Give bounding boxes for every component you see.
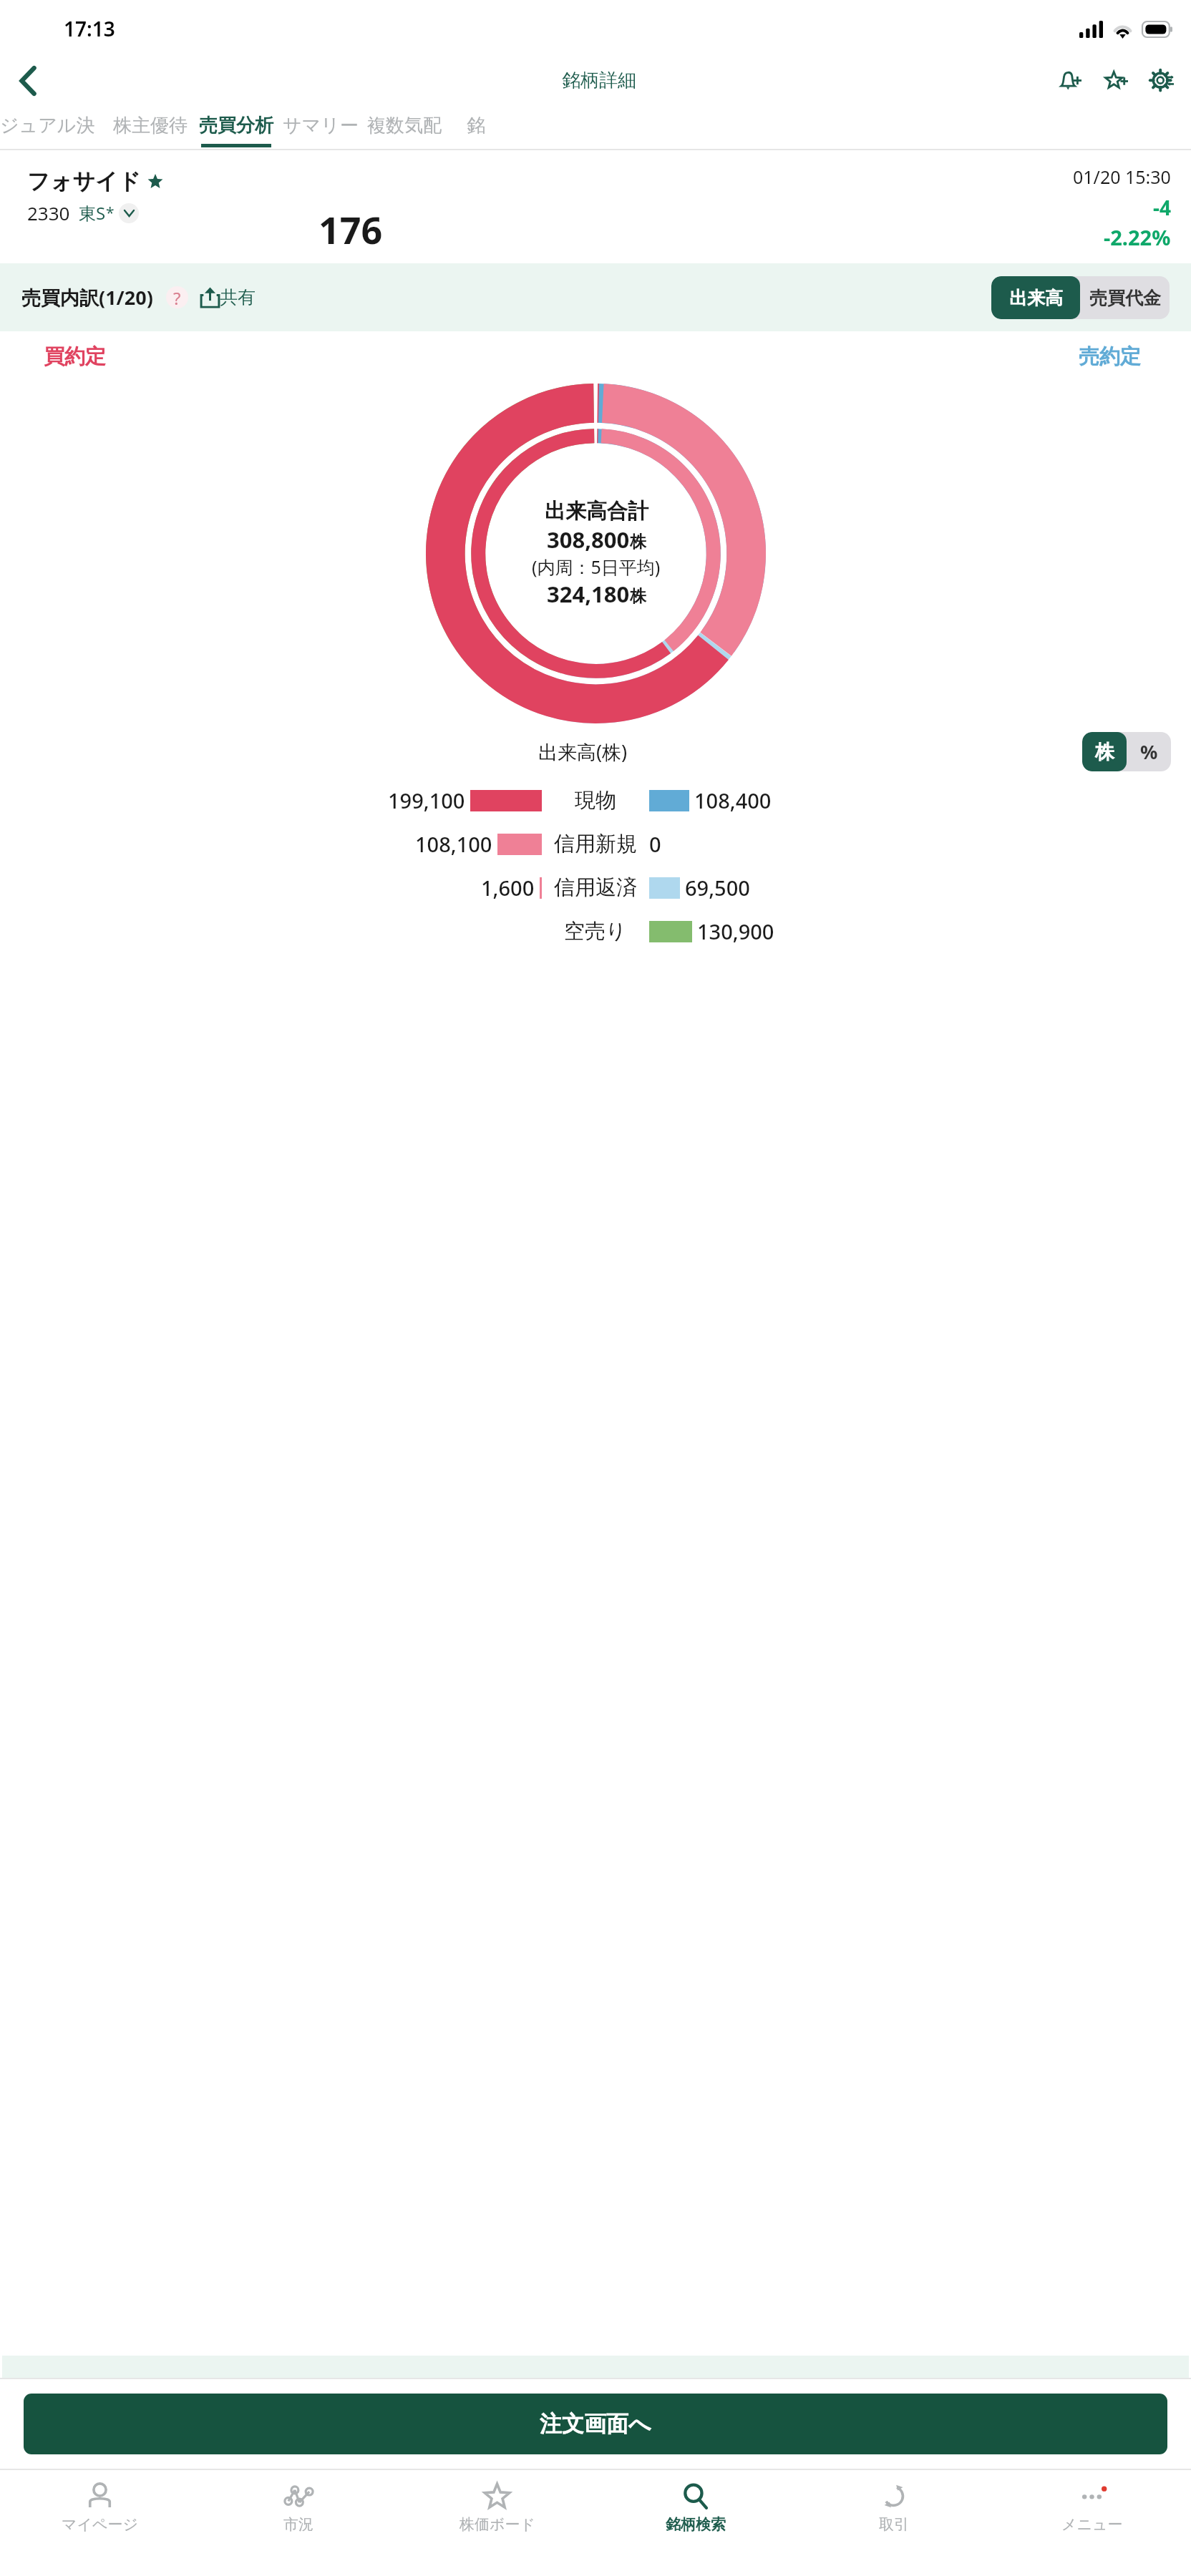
staticText: 17:13 <box>64 15 115 42</box>
button[interactable]: ジュアル決算 <box>0 104 107 150</box>
staticText: 信用新規 <box>554 831 637 857</box>
staticText: 1,600 <box>481 874 535 902</box>
button[interactable]: 売買分析 <box>193 104 279 150</box>
staticText: 信用返済 <box>554 874 637 901</box>
staticText: 69,500 <box>685 874 750 902</box>
staticText: 現物 <box>575 787 616 814</box>
button[interactable]: Back <box>9 61 48 100</box>
button[interactable]: 複数気配 <box>361 104 447 150</box>
button[interactable]: 108,100 <box>0 822 1191 866</box>
button[interactable]: 銘 <box>447 104 505 150</box>
staticText: % <box>1140 738 1158 765</box>
staticText: ? <box>173 286 181 308</box>
staticText: 株 <box>1095 740 1114 764</box>
staticText: フォサイド <box>27 167 141 195</box>
staticText: -2.22% <box>1104 223 1171 251</box>
staticText: 空売り <box>564 918 627 945</box>
button[interactable]: 空売り <box>0 909 1191 953</box>
staticText: 売約定 <box>1079 343 1141 370</box>
button[interactable]: 199,100 <box>0 779 1191 822</box>
staticText: 売買代金 <box>1089 287 1161 309</box>
staticText: 出来高合計 <box>545 498 648 525</box>
staticText: 130,900 <box>697 917 774 945</box>
staticText: 2330 <box>27 200 70 225</box>
button[interactable]: 市況 <box>199 2477 398 2555</box>
button[interactable]: Settings <box>1143 62 1180 99</box>
button[interactable]: 出来高 <box>991 276 1080 319</box>
button[interactable]: 取引 <box>794 2477 993 2555</box>
staticText: 出来高(株) <box>538 738 628 765</box>
staticText: 199,100 <box>388 786 465 814</box>
button[interactable]: サマリー <box>279 104 361 150</box>
staticText: 売買内訳(1/20) <box>21 284 153 311</box>
staticText: -4 <box>1153 194 1171 221</box>
staticText: 01/20 15:30 <box>1073 165 1171 189</box>
button[interactable]: 株価ボード <box>398 2477 596 2555</box>
staticText: (内周：5日平均) <box>532 555 661 579</box>
staticText: 東S <box>79 201 106 225</box>
staticText: 買約定 <box>44 343 106 370</box>
button[interactable]: Add alert <box>1051 62 1089 99</box>
staticText: 取引 <box>879 2515 909 2534</box>
staticText: 株価ボード <box>460 2515 535 2534</box>
button[interactable]: 売買代金 <box>1080 276 1170 319</box>
staticText: 176 <box>319 204 383 255</box>
staticText: 注文画面へ <box>540 2410 651 2438</box>
staticText: 売買分析 <box>199 114 273 137</box>
staticText: 308,800 <box>547 525 630 555</box>
button[interactable]: % <box>1127 732 1171 771</box>
staticText: 108,400 <box>694 786 772 814</box>
staticText: 銘柄検索 <box>666 2515 726 2534</box>
button[interactable]: Expand market <box>119 203 139 223</box>
button[interactable] <box>147 174 163 190</box>
staticText: * <box>106 203 115 223</box>
staticText: 324,180 <box>547 579 630 609</box>
staticText: マイページ <box>62 2515 138 2534</box>
staticText: ジュアル決算 <box>0 114 107 137</box>
button[interactable]: 注文画面へ <box>24 2394 1167 2454</box>
staticText: 株 <box>630 532 646 552</box>
staticText: 銘 <box>467 114 485 137</box>
button[interactable]: 1,600 <box>0 866 1191 909</box>
staticText: 銘柄詳細 <box>562 69 636 92</box>
button[interactable]: マイページ <box>0 2477 199 2555</box>
button[interactable]: Help <box>166 286 188 308</box>
staticText: 株主優待 <box>113 114 188 137</box>
button[interactable]: 株 <box>1082 732 1127 771</box>
staticText: 108,100 <box>415 830 492 858</box>
staticText: サマリー <box>283 114 359 137</box>
button[interactable]: Add to favorites <box>1097 62 1134 99</box>
button[interactable]: メニュー <box>993 2477 1191 2555</box>
staticText: 共有 <box>220 286 256 308</box>
button[interactable]: 共有 <box>200 286 256 308</box>
button[interactable]: 銘柄検索 <box>596 2477 794 2555</box>
staticText: 複数気配 <box>367 114 442 137</box>
staticText: メニュー <box>1061 2515 1123 2534</box>
staticText: 市況 <box>283 2515 313 2534</box>
staticText: 出来高 <box>1009 287 1063 309</box>
staticText: 0 <box>649 830 661 858</box>
staticText: 株 <box>630 586 646 607</box>
button[interactable]: 株主優待 <box>107 104 193 150</box>
